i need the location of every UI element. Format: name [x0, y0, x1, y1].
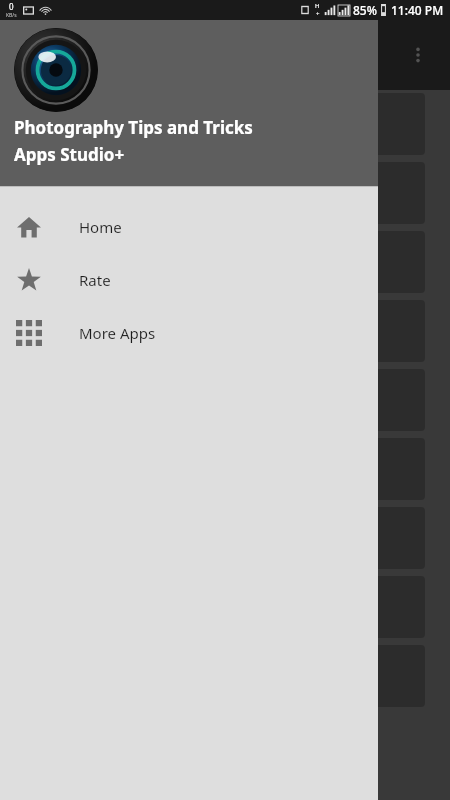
button[interactable]: Home	[0, 200, 378, 253]
button[interactable]: Landscape Shots	[10, 438, 425, 500]
button[interactable]: Rate	[0, 253, 378, 306]
staticText: 11:40 PM	[391, 2, 444, 18]
staticText: Apps Studio+	[14, 143, 125, 166]
staticText: +	[316, 10, 320, 18]
staticText: H	[315, 2, 320, 10]
staticText: Rate	[79, 270, 111, 290]
staticText: Home	[79, 217, 122, 237]
staticText: Camera Settings for You	[24, 182, 229, 205]
button[interactable]: Lighting Tips	[10, 231, 425, 293]
staticText: 0	[9, 1, 14, 12]
button[interactable]: Camera Settings for You	[10, 162, 425, 224]
button[interactable]: Portrait Photography	[10, 369, 425, 431]
staticText: Lighting Tips	[24, 251, 134, 274]
staticText: Composition Rules	[24, 320, 182, 343]
button[interactable]: More options	[398, 35, 438, 75]
staticText: 85%	[353, 2, 377, 18]
staticText: Photography Tips and Tricks	[14, 116, 253, 139]
staticText: Photography Basics	[24, 113, 191, 136]
button[interactable]: Night Mode Guide	[10, 507, 425, 569]
button[interactable]: More Apps	[0, 306, 378, 359]
button[interactable]: Lens Choices	[10, 645, 425, 707]
button[interactable]: Composition Rules	[10, 300, 425, 362]
staticText: More Apps	[79, 323, 156, 343]
button[interactable]: Editing Essentials	[10, 576, 425, 638]
staticText: KB/s	[6, 12, 17, 19]
button[interactable]: Photography Basics	[10, 93, 425, 155]
